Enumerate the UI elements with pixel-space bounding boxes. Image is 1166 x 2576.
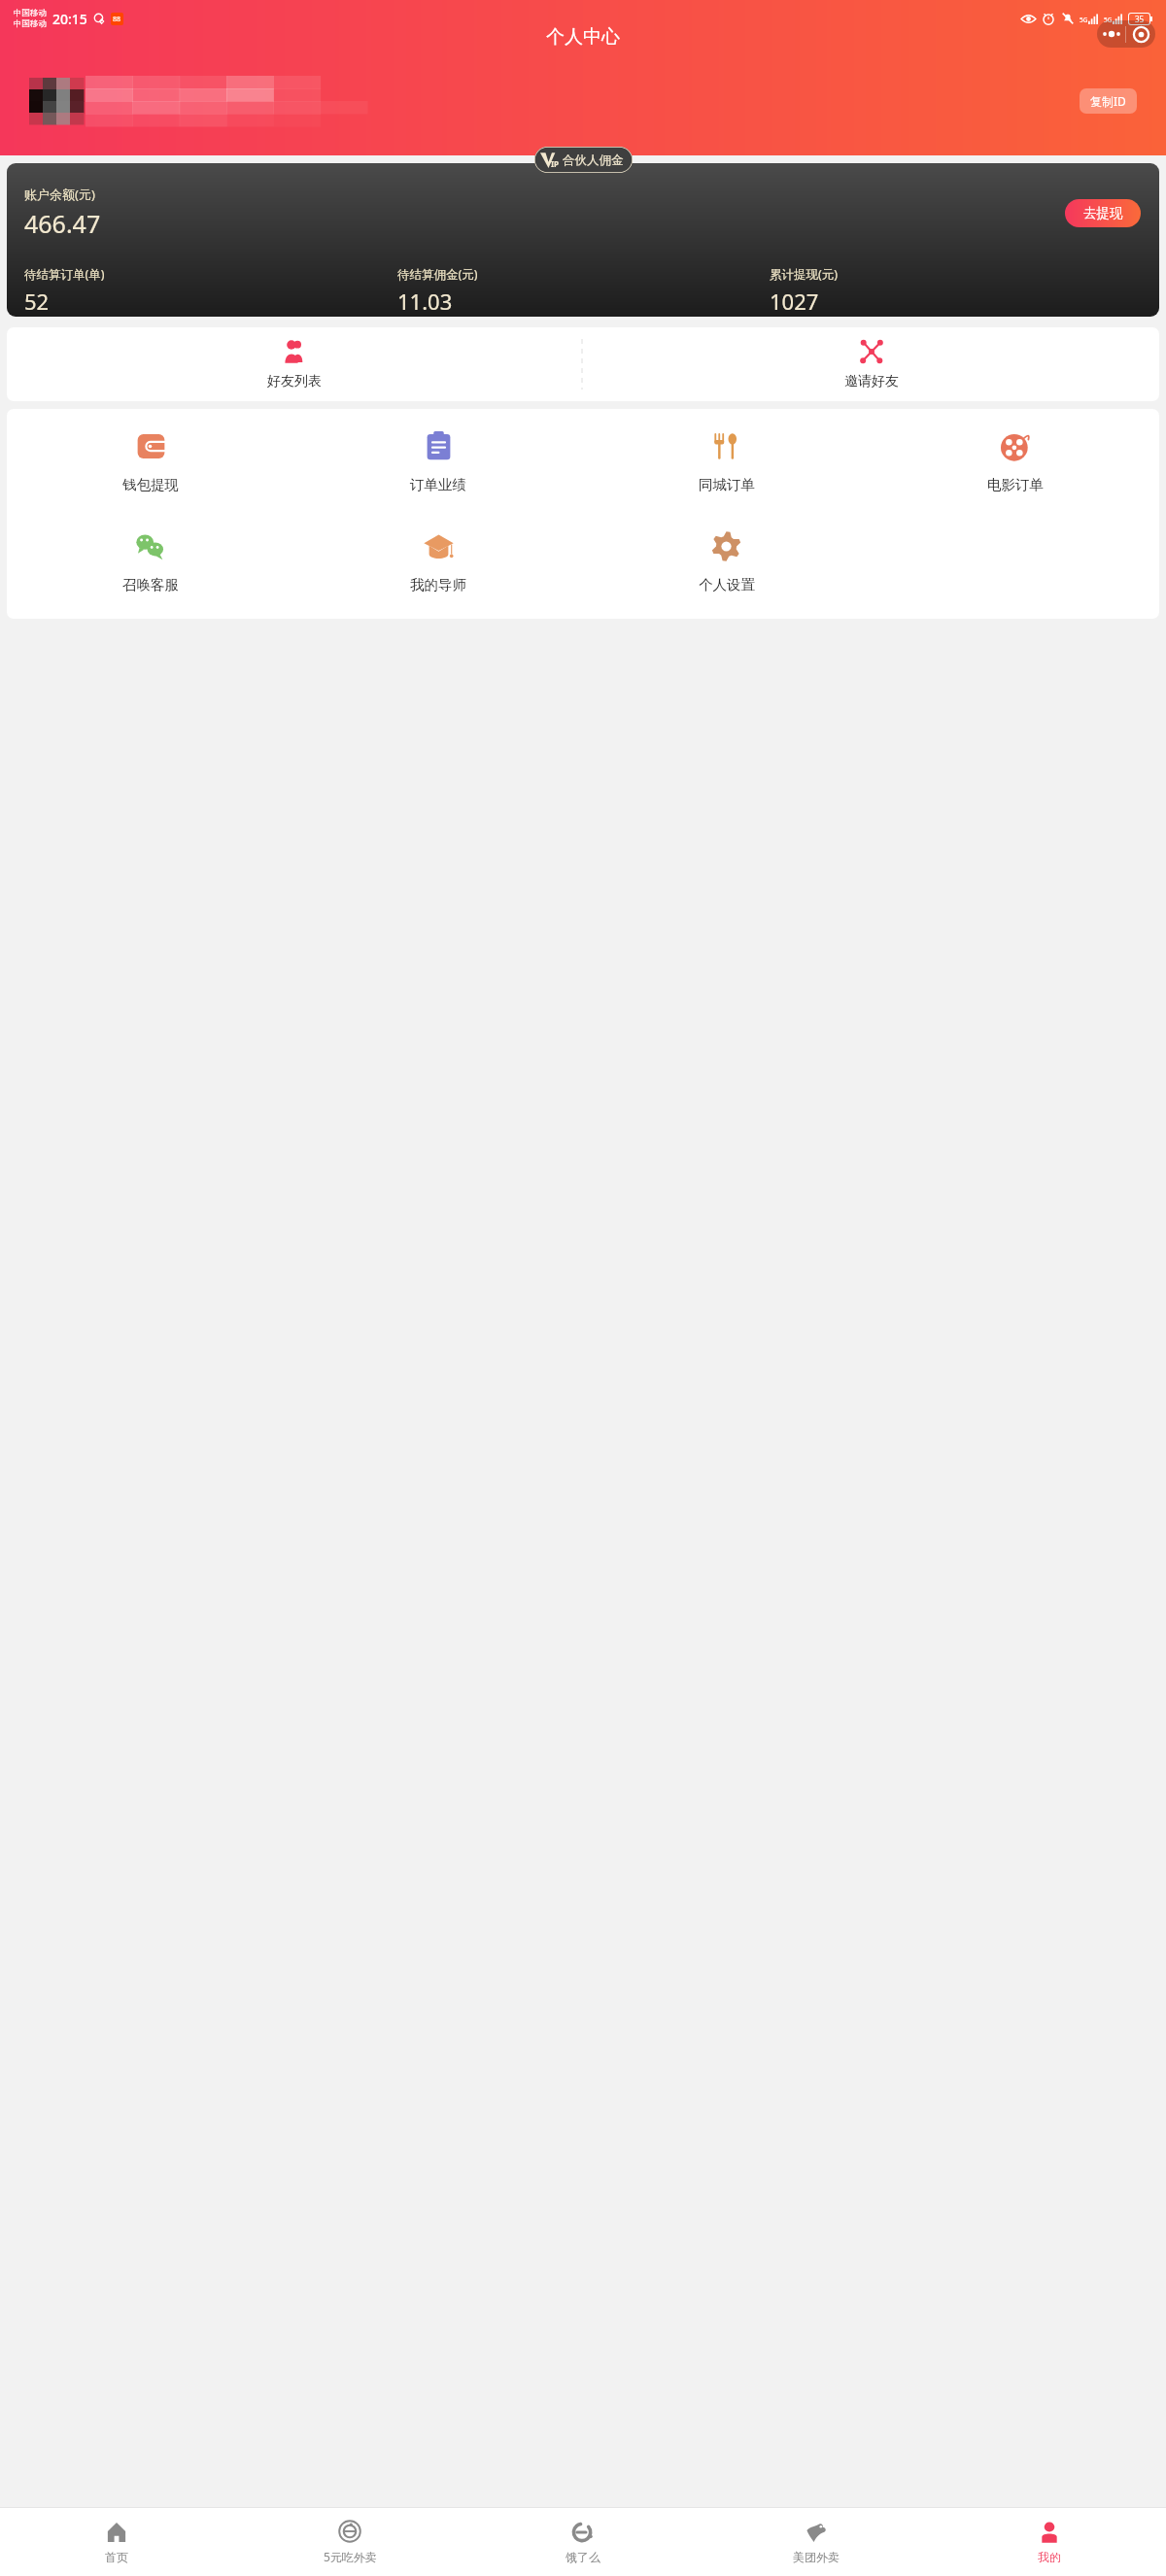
staticText: 合伙人佣金	[563, 153, 624, 168]
button[interactable]: More	[1097, 20, 1155, 48]
staticText: 35	[1135, 14, 1145, 24]
button[interactable]: 我的导师	[294, 523, 582, 601]
other: Target	[1126, 20, 1155, 48]
staticText: 累计提现(元)	[770, 266, 839, 283]
button[interactable]: 饿了么	[466, 2508, 700, 2576]
staticText: 个人设置	[699, 576, 755, 593]
staticText: 订单业绩	[410, 476, 466, 493]
button[interactable]: 订单业绩	[294, 423, 582, 501]
staticText: 账户余额(元)	[24, 186, 95, 203]
button[interactable]: 我的	[933, 2508, 1166, 2576]
staticText: 复制ID	[1090, 93, 1126, 109]
other: More	[1097, 20, 1125, 48]
button[interactable]: 邀请好友	[583, 327, 1159, 401]
button[interactable]: 美团外卖	[700, 2508, 933, 2576]
staticText: 1027	[770, 287, 819, 316]
button[interactable]: 累计提现(元)	[770, 266, 1142, 316]
button[interactable]: 待结算订单(单)	[24, 266, 397, 316]
staticText: 5元吃外卖	[324, 2549, 377, 2564]
button[interactable]: 好友列表	[7, 327, 582, 401]
staticText: 我的	[1038, 2550, 1061, 2564]
button[interactable]: 复制ID	[1080, 88, 1137, 114]
button[interactable]: 钱包提现	[7, 423, 294, 501]
button[interactable]: 电影订单	[871, 423, 1159, 501]
staticText: 5G	[1104, 16, 1113, 24]
staticText: 首页	[105, 2550, 128, 2564]
staticText: 饿了么	[566, 2550, 600, 2564]
staticText: 去提现	[1083, 205, 1123, 221]
button[interactable]: 5元吃外卖	[233, 2508, 466, 2576]
button[interactable]: 首页	[0, 2508, 233, 2576]
button[interactable]: IP	[534, 147, 633, 173]
staticText: 5G	[1080, 16, 1088, 24]
staticText: 好友列表	[267, 373, 322, 390]
staticText: 20:15	[52, 10, 87, 28]
staticText: 52	[24, 287, 50, 316]
staticText: 88	[113, 15, 121, 24]
button[interactable]: 去提现	[1065, 199, 1141, 227]
button[interactable]: 待结算佣金(元)	[397, 266, 770, 316]
staticText: 召唤客服	[122, 576, 179, 593]
staticText: 我的导师	[410, 576, 466, 593]
button[interactable]: 个人设置	[582, 523, 871, 601]
staticText: 同城订单	[699, 476, 755, 493]
staticText: 待结算佣金(元)	[397, 266, 478, 283]
button[interactable]: 召唤客服	[7, 523, 294, 601]
staticText: 电影订单	[987, 476, 1044, 493]
staticText: 中国移动	[14, 18, 47, 29]
staticText: 个人中心	[546, 25, 620, 49]
staticText: 中国移动	[14, 8, 47, 18]
button[interactable]: 同城订单	[582, 423, 871, 501]
staticText: 11.03	[397, 287, 453, 316]
staticText: 钱包提现	[122, 476, 179, 493]
staticText: 466.47	[24, 207, 101, 240]
staticText: IP	[551, 158, 560, 169]
staticText: 美团外卖	[793, 2550, 840, 2564]
staticText: 邀请好友	[844, 373, 899, 390]
staticText: 待结算订单(单)	[24, 266, 105, 283]
